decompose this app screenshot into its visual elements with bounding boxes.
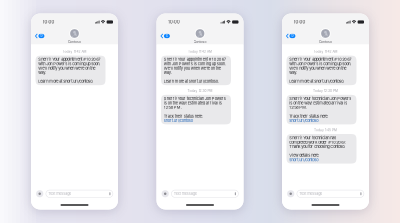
staticText: 10:00 xyxy=(168,19,180,25)
button[interactable]: Back to conversations xyxy=(156,28,176,44)
button[interactable]: Text message field xyxy=(46,190,113,197)
staticText: Contoso xyxy=(68,40,81,44)
staticText: Sherri! Your technician Jon Powers xyxy=(289,96,351,101)
staticText: Today xyxy=(187,89,197,93)
staticText: Learn more at short.url/contoso. xyxy=(164,79,219,84)
staticText: short.url/contoso xyxy=(289,118,318,123)
staticText: short.url/contoso xyxy=(289,157,318,162)
staticText: 11:42 AM xyxy=(325,50,338,54)
staticText: Sherri! Your appointment #102067 xyxy=(289,57,351,62)
staticText: with Jon Powers is coming up soon. xyxy=(164,61,226,66)
staticText: Track their status here: xyxy=(164,114,203,119)
staticText: 12:58 PM. xyxy=(164,105,182,110)
staticText: Sherri! Your appointment #102067 xyxy=(38,57,100,62)
staticText: 10:00 xyxy=(42,19,54,25)
staticText: Text message xyxy=(174,191,197,196)
staticText: Sherri! Your appointment #102067 xyxy=(164,57,226,62)
button[interactable]: Camera xyxy=(287,190,294,197)
staticText: We'll notify you when we're on the xyxy=(289,66,346,71)
staticText: 12 xyxy=(291,34,294,38)
button[interactable]: Back to conversations xyxy=(31,28,51,44)
button[interactable]: Camera xyxy=(36,190,43,197)
staticText: Text message xyxy=(48,191,71,196)
staticText: Today xyxy=(188,50,198,54)
staticText: completed work order #102067. xyxy=(289,140,346,145)
staticText: is on the way! Estimated arrival is xyxy=(289,101,347,105)
staticText: 1:45 PM xyxy=(325,128,337,132)
staticText: 12:30 PM xyxy=(324,89,338,93)
staticText: with Jon Powers is coming up soon. xyxy=(38,61,100,66)
staticText: 11:42 AM xyxy=(199,50,212,54)
staticText: Today xyxy=(62,50,72,54)
staticText: 11:42 AM xyxy=(73,50,86,54)
staticText: Thank you for choosing Contoso. xyxy=(289,144,345,149)
staticText: We'll notify you when we're on the xyxy=(38,66,95,71)
staticText: 12:30 PM xyxy=(198,89,212,93)
staticText: way. xyxy=(164,70,172,75)
button[interactable]: Text message field xyxy=(297,190,364,197)
staticText: 10:00 xyxy=(293,19,305,25)
staticText: View details here: xyxy=(289,153,319,158)
staticText: 12 xyxy=(40,34,43,38)
button[interactable]: Text message field xyxy=(171,190,238,197)
staticText: way. xyxy=(289,70,297,75)
staticText: Sherri! Your technician has xyxy=(289,135,336,140)
staticText: 12:58 PM. xyxy=(289,105,307,110)
button[interactable]: Camera xyxy=(162,190,169,197)
staticText: Today xyxy=(314,128,324,132)
staticText: Contoso xyxy=(319,40,332,44)
staticText: 12 xyxy=(165,34,168,38)
staticText: Today xyxy=(313,89,323,93)
staticText: We'll notify you when we're on the xyxy=(164,66,221,71)
staticText: Learn more at short.url/contoso. xyxy=(289,79,344,84)
staticText: Contoso xyxy=(193,40,206,44)
staticText: Learn more at short.url/contoso. xyxy=(38,79,93,84)
staticText: Track their status here: xyxy=(289,114,328,119)
staticText: Today xyxy=(313,50,323,54)
staticText: Sherri! Your technician Jon Powers xyxy=(164,96,226,101)
staticText: is on the way! Estimated arrival is xyxy=(164,101,222,105)
button[interactable]: Back to conversations xyxy=(282,28,302,44)
staticText: way. xyxy=(38,70,46,75)
staticText: short.url/contoso xyxy=(164,118,193,123)
staticText: Text message xyxy=(299,191,322,196)
staticText: with Jon Powers is coming up soon. xyxy=(289,61,351,66)
